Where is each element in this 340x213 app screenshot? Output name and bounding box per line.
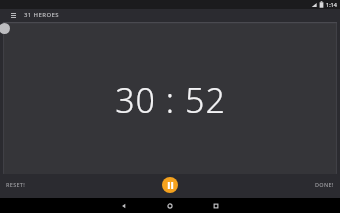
button[interactable]: Pause timer (162, 177, 178, 193)
staticText: DONE! (315, 181, 334, 188)
button[interactable]: DONE! (313, 179, 336, 190)
button[interactable]: Back (101, 198, 147, 213)
staticText: 31 HEROES (24, 11, 59, 19)
button[interactable]: RESET! (4, 179, 28, 190)
button[interactable]: Recent apps (193, 198, 239, 213)
button[interactable]: Back (0, 23, 10, 34)
staticText: RESET! (6, 181, 26, 188)
button[interactable]: Open navigation menu (8, 10, 18, 20)
staticText: 30 : 52 (115, 77, 226, 123)
button[interactable]: Home (147, 198, 193, 213)
staticText: 1:14 (326, 1, 337, 8)
